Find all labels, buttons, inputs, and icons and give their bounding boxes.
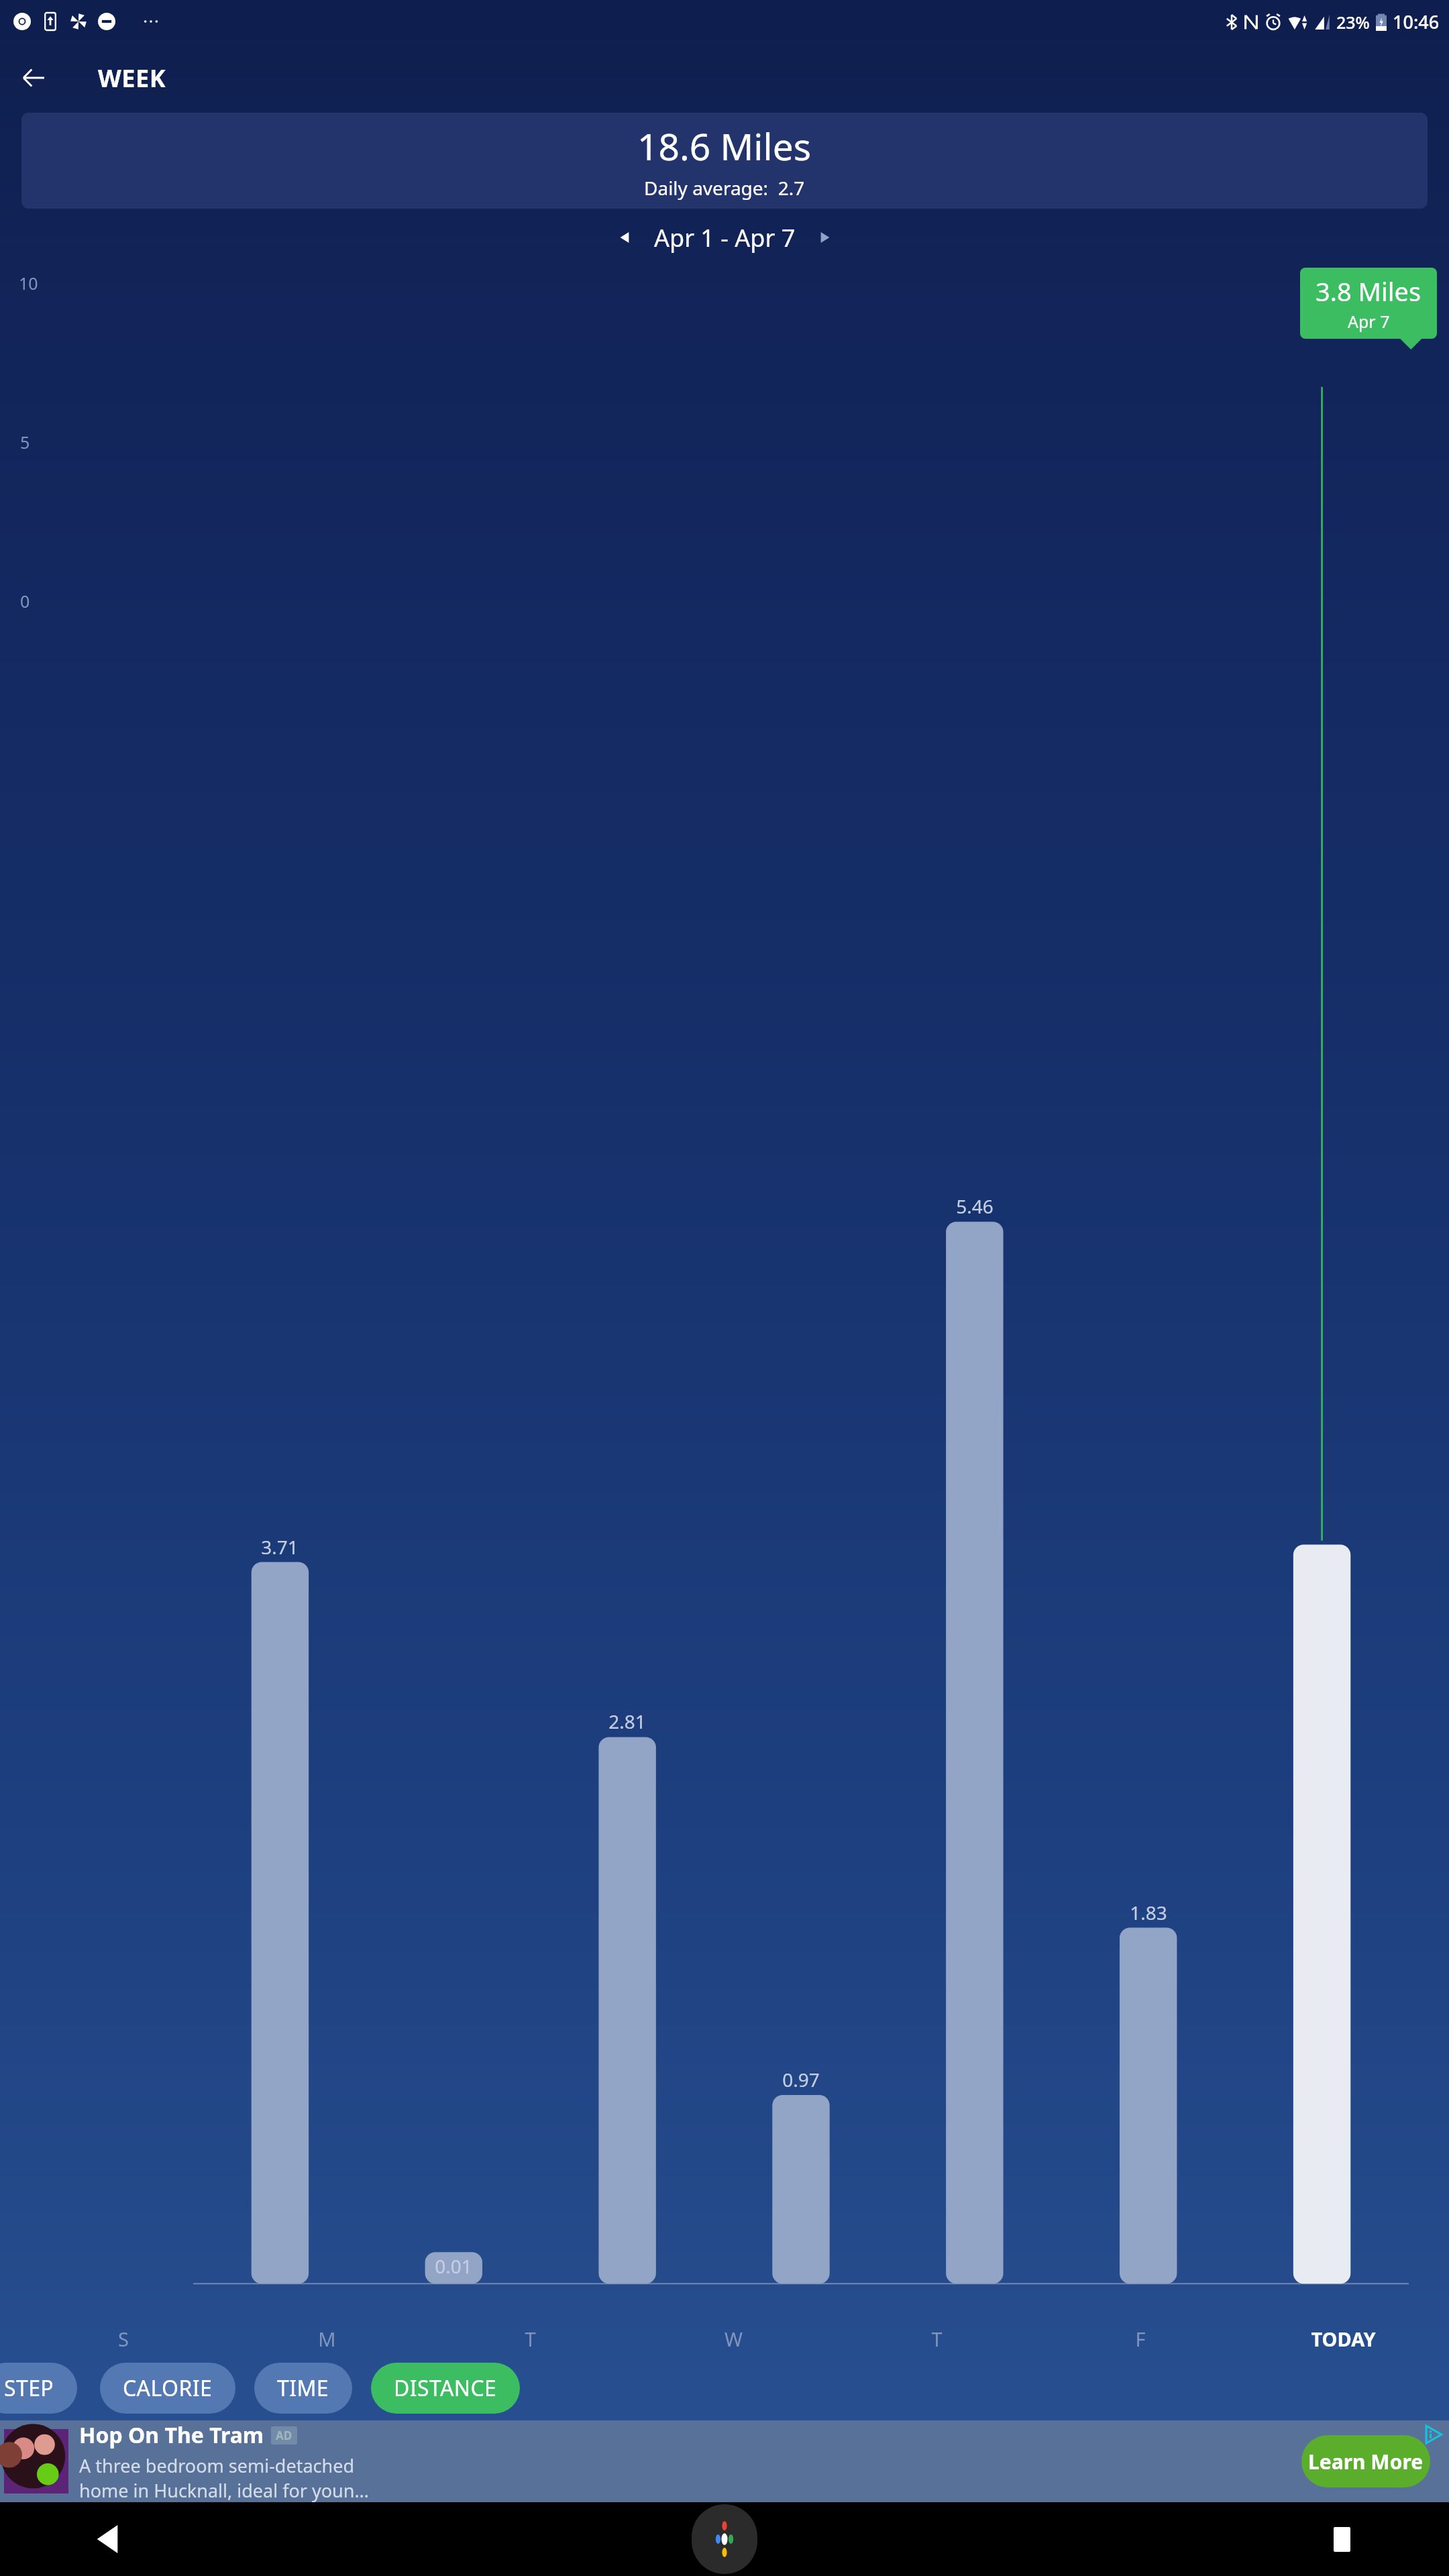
staticText: 10	[19, 272, 38, 294]
staticText: Daily average: 2.7	[644, 175, 805, 201]
staticText: T	[931, 2326, 943, 2352]
staticText: Apr 7	[1348, 310, 1390, 333]
button[interactable]: Recents	[1316, 2514, 1367, 2565]
button[interactable]: Back	[82, 2514, 133, 2565]
staticText: A three bedroom semi-detached	[79, 2453, 355, 2478]
staticText: CALORIE	[123, 2373, 213, 2403]
button[interactable]: STEP	[0, 2363, 77, 2414]
staticText: 18.6 Miles	[637, 121, 812, 171]
button[interactable]: 18.6 Miles	[21, 113, 1428, 209]
staticText: DISTANCE	[394, 2373, 497, 2403]
staticText: Apr 1 - Apr 7	[654, 221, 796, 254]
staticText: 0	[20, 590, 30, 612]
staticText: F	[1135, 2326, 1146, 2352]
button[interactable]: Home	[692, 2504, 757, 2574]
staticText: 2.81	[608, 1709, 646, 1734]
staticText: W	[724, 2326, 743, 2352]
button[interactable]: TIME	[254, 2363, 352, 2414]
button[interactable]: 3.8 Miles	[1300, 268, 1437, 339]
staticText: TIME	[277, 2373, 329, 2403]
staticText: T	[525, 2326, 536, 2352]
staticText: Hop On The Tram	[79, 2420, 264, 2450]
staticText: 23%	[1336, 11, 1370, 34]
staticText: AD	[276, 2428, 292, 2443]
button[interactable]: Learn More	[1301, 2435, 1430, 2487]
staticText: WEEK	[98, 62, 166, 95]
staticText: TODAY	[1311, 2326, 1376, 2352]
staticText: 10:46	[1393, 9, 1440, 34]
staticText: Learn More	[1308, 2448, 1424, 2475]
staticText: M	[318, 2326, 336, 2352]
button[interactable]: Hop On The Tram	[0, 2420, 1449, 2502]
button[interactable]: Back	[9, 54, 58, 102]
button[interactable]: Next week	[808, 220, 843, 255]
button[interactable]: CALORIE	[100, 2363, 235, 2414]
staticText: STEP	[4, 2373, 54, 2403]
staticText: 3.8 Miles	[1316, 274, 1421, 309]
staticText: 0.97	[782, 2067, 820, 2092]
staticText: S	[118, 2326, 129, 2352]
staticText: home in Hucknall, ideal for youn…	[79, 2478, 369, 2502]
staticText: 3.71	[261, 1534, 299, 1560]
button[interactable]: Previous week	[607, 220, 642, 255]
button[interactable]: DISTANCE	[371, 2363, 520, 2414]
staticText: 5.46	[956, 1193, 994, 1219]
staticText: 0.01	[435, 2253, 472, 2279]
staticText: 5	[20, 431, 30, 453]
staticText: 1.83	[1130, 1900, 1167, 1925]
